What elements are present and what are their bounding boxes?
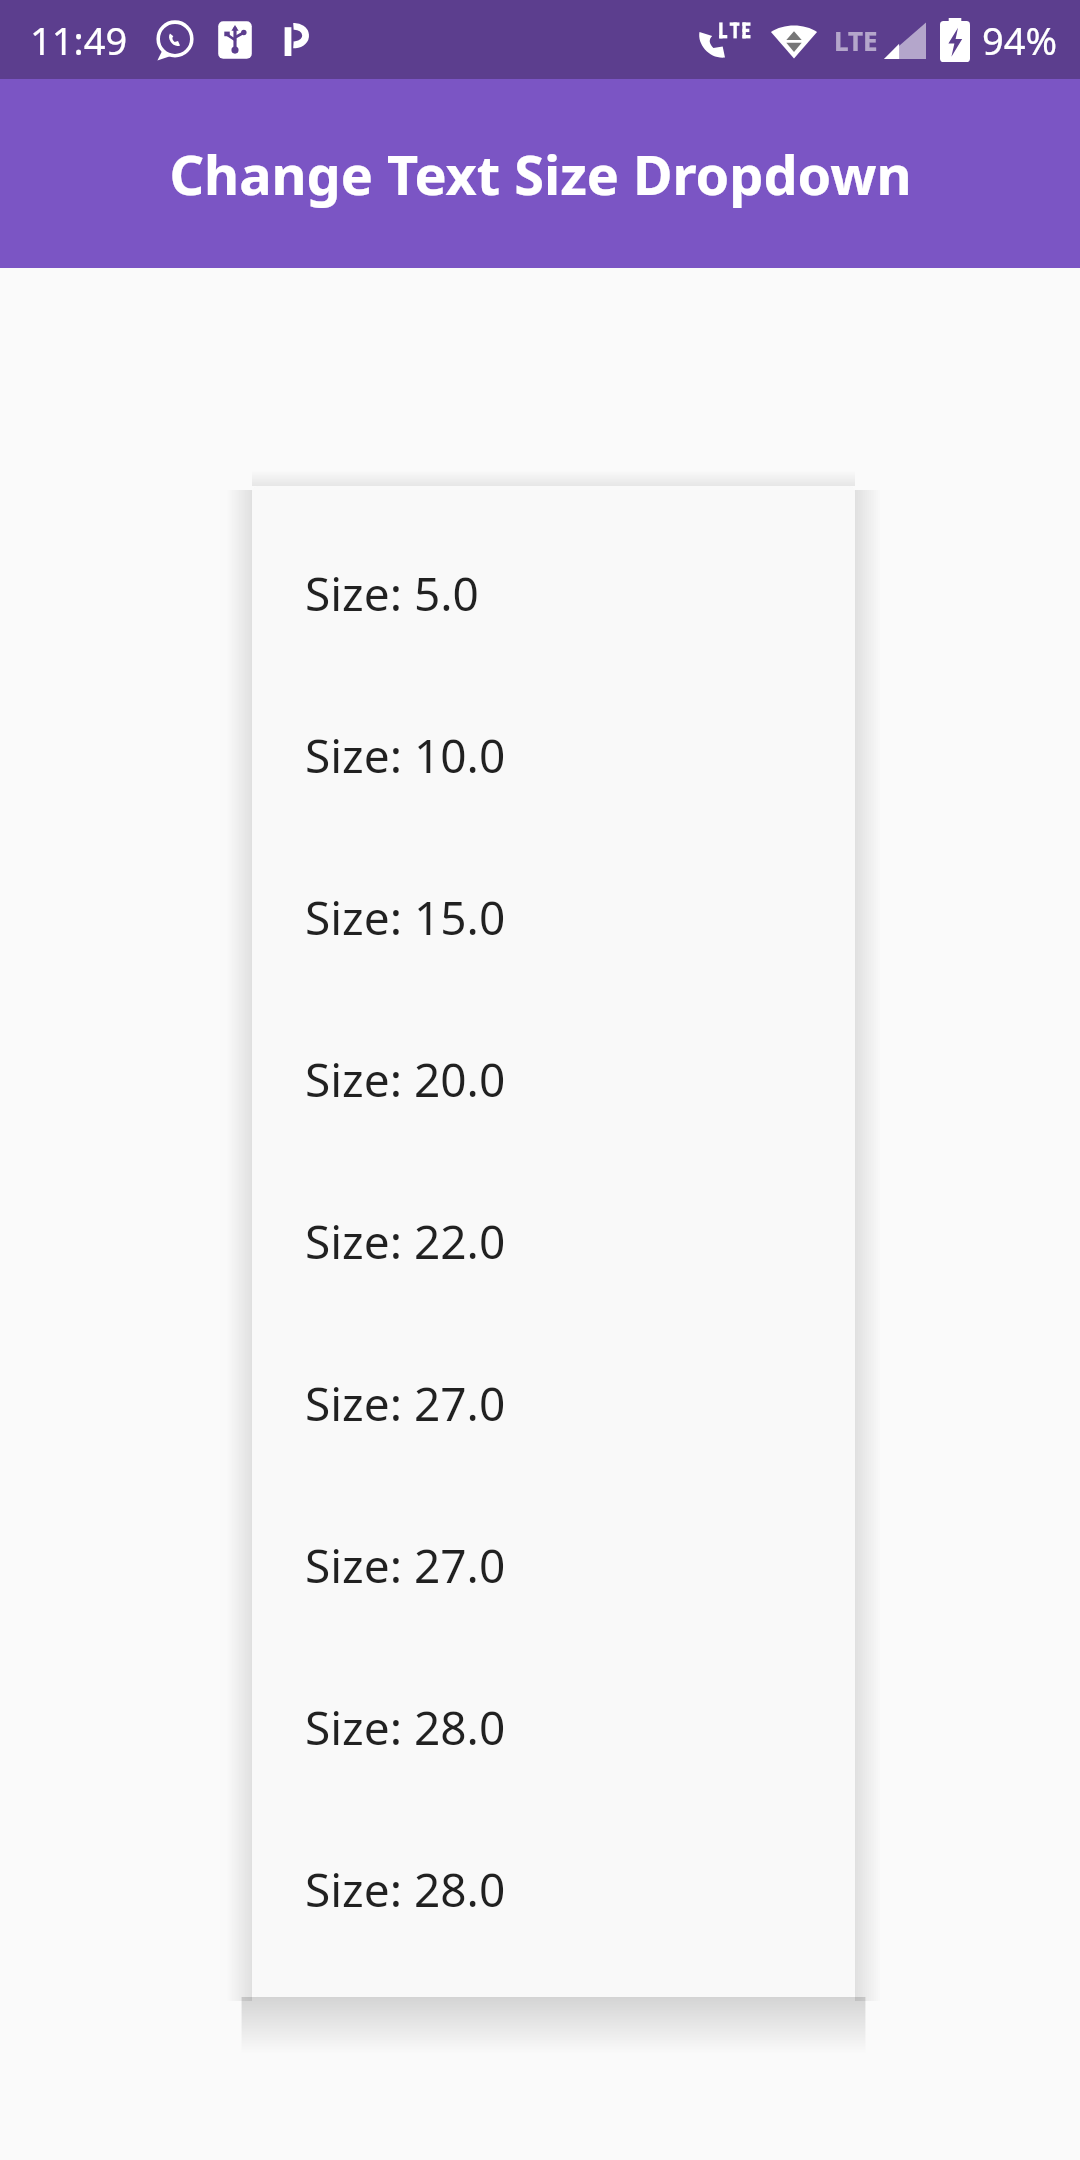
button[interactable]: Size: 22.0 xyxy=(252,1160,855,1322)
staticText: 11:49 xyxy=(30,14,128,66)
staticText: Size: 27.0 xyxy=(305,1534,506,1597)
staticText: Size: 10.0 xyxy=(305,724,506,787)
staticText: Size: 28.0 xyxy=(305,1696,506,1759)
button[interactable]: Size: 5.0 xyxy=(252,512,855,674)
staticText: Size: 28.0 xyxy=(305,1858,506,1921)
button[interactable]: Size: 27.0 xyxy=(252,1484,855,1646)
button[interactable]: Size: 28.0 xyxy=(252,1808,855,1970)
button[interactable]: Size: 20.0 xyxy=(252,998,855,1160)
staticText: Size: 20.0 xyxy=(305,1048,506,1111)
button[interactable]: Size: 10.0 xyxy=(252,674,855,836)
staticText: Size: 15.0 xyxy=(305,886,506,949)
staticText: Size: 5.0 xyxy=(305,562,479,625)
button[interactable]: Size: 15.0 xyxy=(252,836,855,998)
button[interactable]: Size: 28.0 xyxy=(252,1646,855,1808)
staticText: Change Text Size Dropdown xyxy=(169,137,912,211)
staticText: Size: 22.0 xyxy=(305,1210,506,1273)
staticText: LTE xyxy=(834,23,878,58)
staticText: 94% xyxy=(982,14,1058,66)
button[interactable]: Size: 27.0 xyxy=(252,1322,855,1484)
staticText: Size: 27.0 xyxy=(305,1372,506,1435)
